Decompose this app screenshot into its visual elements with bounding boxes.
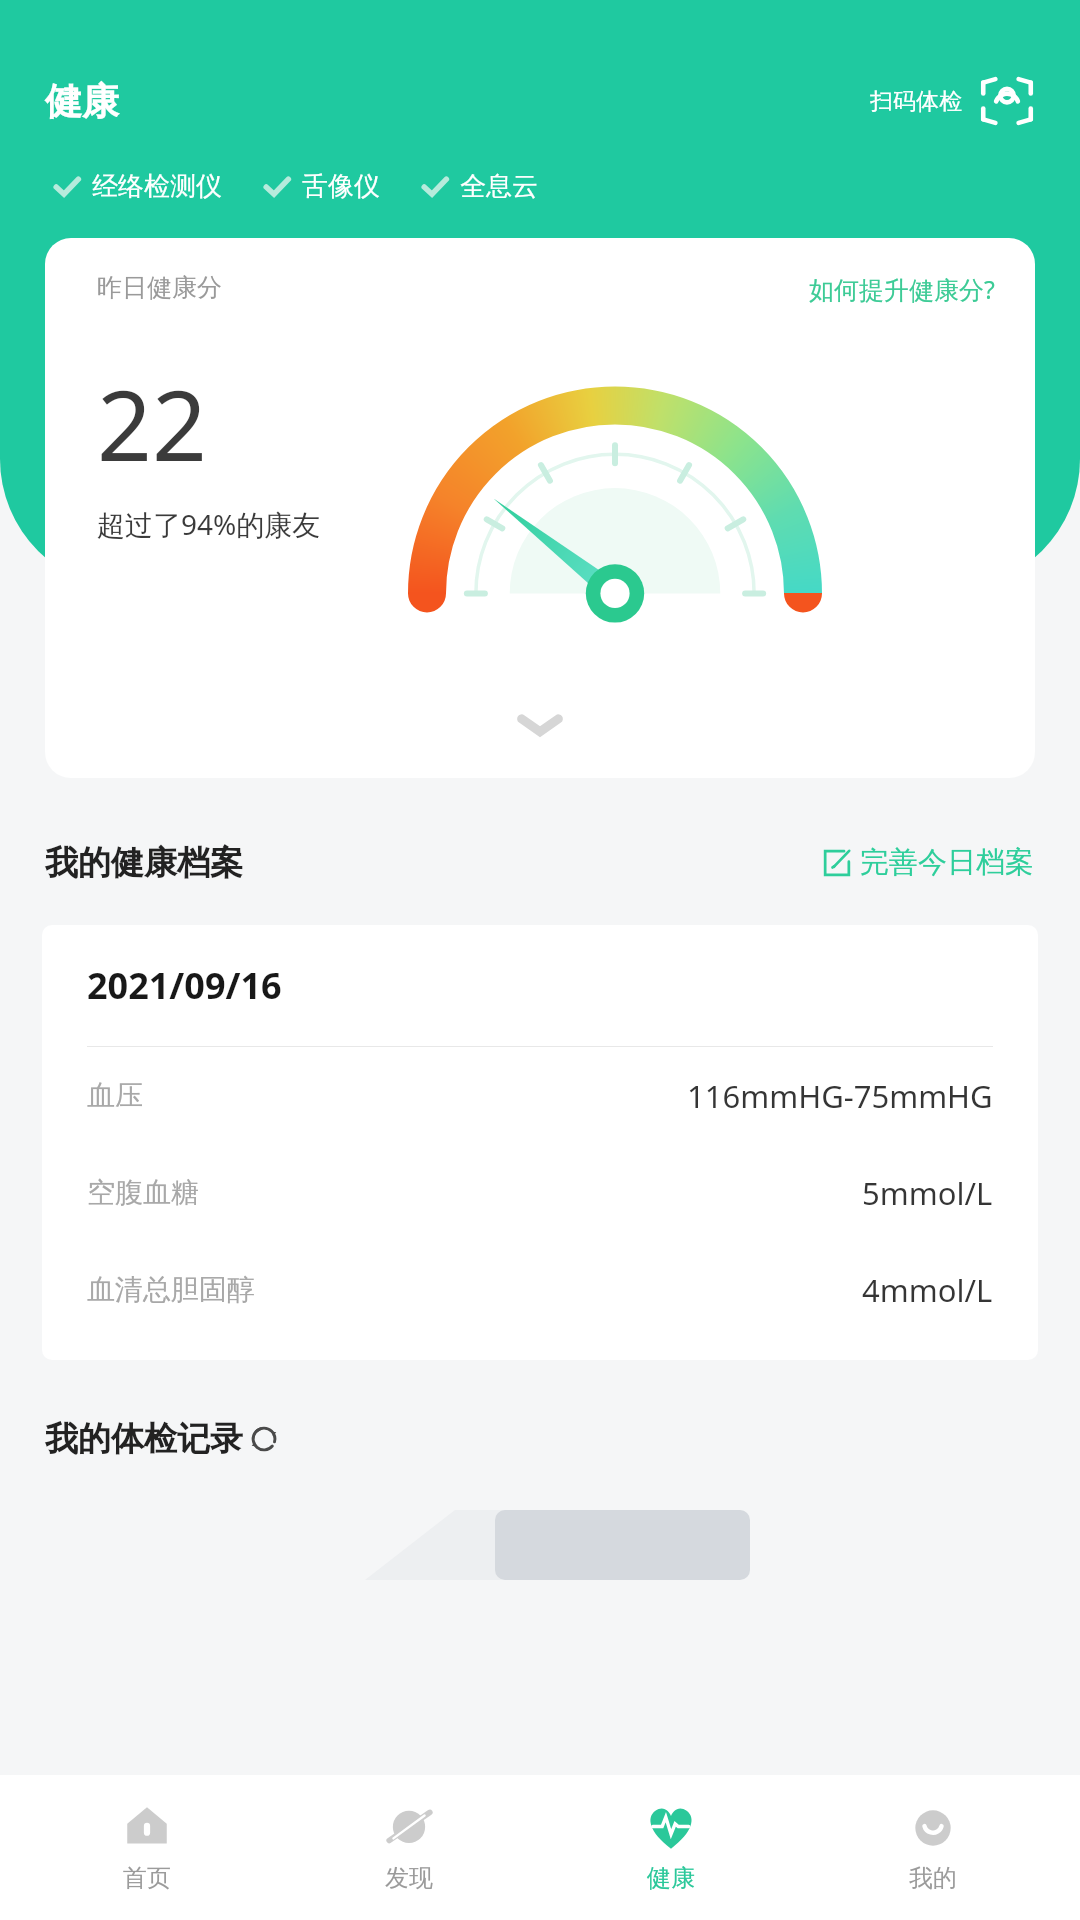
- button[interactable]: 首页: [32, 1796, 262, 1899]
- button[interactable]: 血压: [87, 1047, 993, 1144]
- staticText: 发现: [385, 1863, 433, 1893]
- button[interactable]: 全息云: [420, 170, 538, 203]
- staticText: 我的: [909, 1863, 957, 1893]
- other: 扫码体检: [980, 74, 1034, 128]
- button[interactable]: 完善今日档案: [817, 840, 1038, 885]
- staticText: 我的健康档案: [45, 842, 243, 884]
- staticText: 健康: [647, 1863, 695, 1893]
- staticText: 我的体检记录: [45, 1418, 243, 1460]
- staticText: 4mmol/L: [862, 1269, 993, 1311]
- staticText: 如何提升健康分?: [809, 272, 995, 306]
- staticText: 舌像仪: [302, 170, 380, 203]
- staticText: 完善今日档案: [860, 844, 1034, 881]
- staticText: 22: [97, 358, 207, 489]
- button[interactable]: 展开: [513, 708, 567, 742]
- staticText: 昨日健康分: [97, 272, 222, 303]
- button[interactable]: 空腹血糖: [87, 1144, 993, 1241]
- button[interactable]: 昨日健康分: [45, 238, 1035, 778]
- button[interactable]: 我的: [818, 1796, 1048, 1899]
- staticText: 血清总胆固醇: [87, 1272, 255, 1307]
- staticText: 经络检测仪: [92, 170, 222, 203]
- button[interactable]: 血清总胆固醇: [87, 1241, 993, 1338]
- staticText: 超过了94%的康友: [97, 505, 321, 543]
- staticText: 全息云: [460, 170, 538, 203]
- staticText: 首页: [123, 1863, 171, 1893]
- button[interactable]: 健康: [556, 1796, 786, 1899]
- staticText: 扫码体检: [870, 87, 962, 116]
- button[interactable]: 我的体检记录: [45, 1418, 1080, 1460]
- staticText: 血压: [87, 1078, 143, 1113]
- staticText: 空腹血糖: [87, 1175, 199, 1210]
- button[interactable]: 舌像仪: [262, 170, 380, 203]
- staticText: 健康: [45, 78, 119, 125]
- button[interactable]: 如何提升健康分?: [809, 272, 995, 306]
- button[interactable]: 2021/09/16: [42, 925, 1038, 1360]
- staticText: 5mmol/L: [862, 1172, 993, 1214]
- staticText: 2021/09/16: [87, 961, 282, 1010]
- button[interactable]: 经络检测仪: [52, 170, 222, 203]
- button[interactable]: 发现: [294, 1796, 524, 1899]
- staticText: 116mmHG-75mmHG: [687, 1075, 993, 1117]
- button[interactable]: 扫码体检: [864, 68, 1040, 134]
